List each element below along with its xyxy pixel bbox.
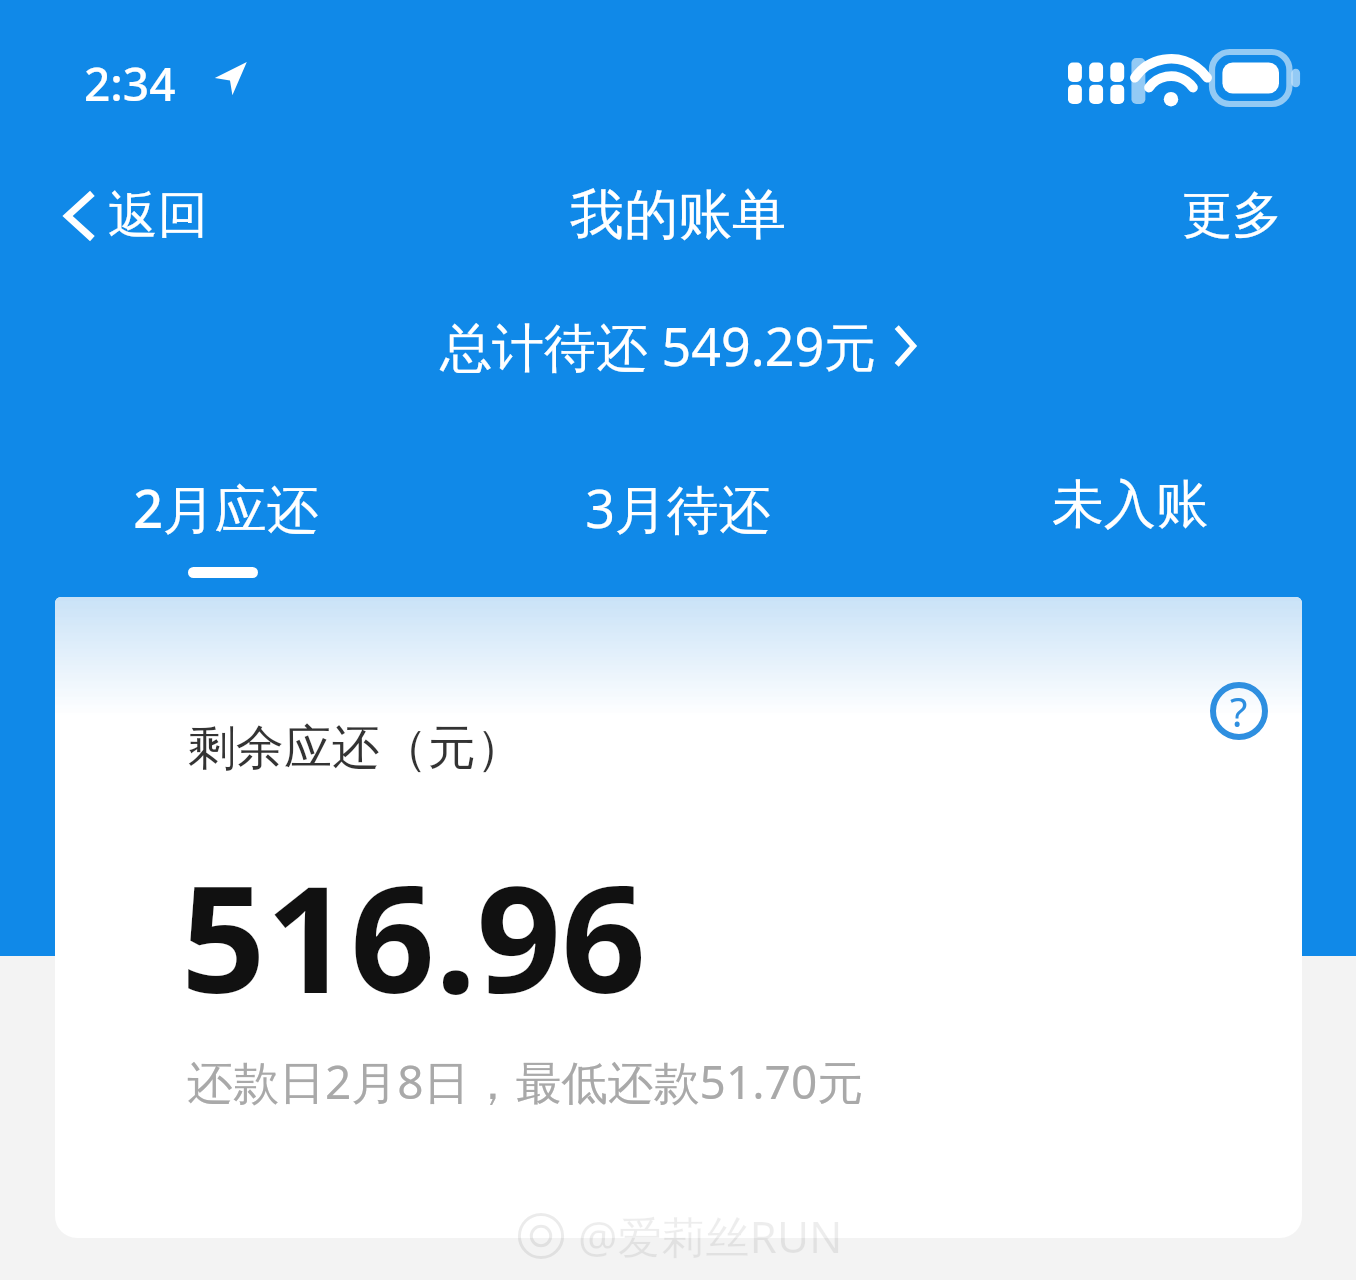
button[interactable]: Help — [1183, 655, 1295, 767]
button[interactable]: Help — [55, 597, 1302, 1238]
staticText: 2月应还 — [133, 472, 319, 543]
staticText: 未入账 — [1052, 472, 1208, 538]
staticText: 3月待还 — [585, 472, 771, 543]
button[interactable]: 3月待还 — [452, 450, 904, 600]
button[interactable]: 更多 — [1182, 184, 1282, 247]
staticText: 2:34 — [84, 52, 176, 115]
button[interactable]: 2月应还 — [0, 450, 452, 600]
staticText: 剩余应还（元） — [188, 718, 524, 778]
staticText: 516.96 — [181, 835, 646, 1037]
button[interactable]: 返回 — [50, 174, 222, 257]
staticText: 返回 — [108, 184, 208, 247]
staticText: @爱莉丝RUN — [578, 1206, 843, 1266]
staticText: 还款日2月8日，最低还款51.70元 — [187, 1050, 864, 1113]
staticText: ? — [1230, 684, 1248, 738]
staticText: 总计待还 549.29元 — [440, 310, 877, 381]
button[interactable]: 总计待还 549.29元 — [0, 310, 1356, 381]
button[interactable]: 未入账 — [904, 450, 1356, 600]
button[interactable]: 我的账单 — [570, 181, 786, 249]
